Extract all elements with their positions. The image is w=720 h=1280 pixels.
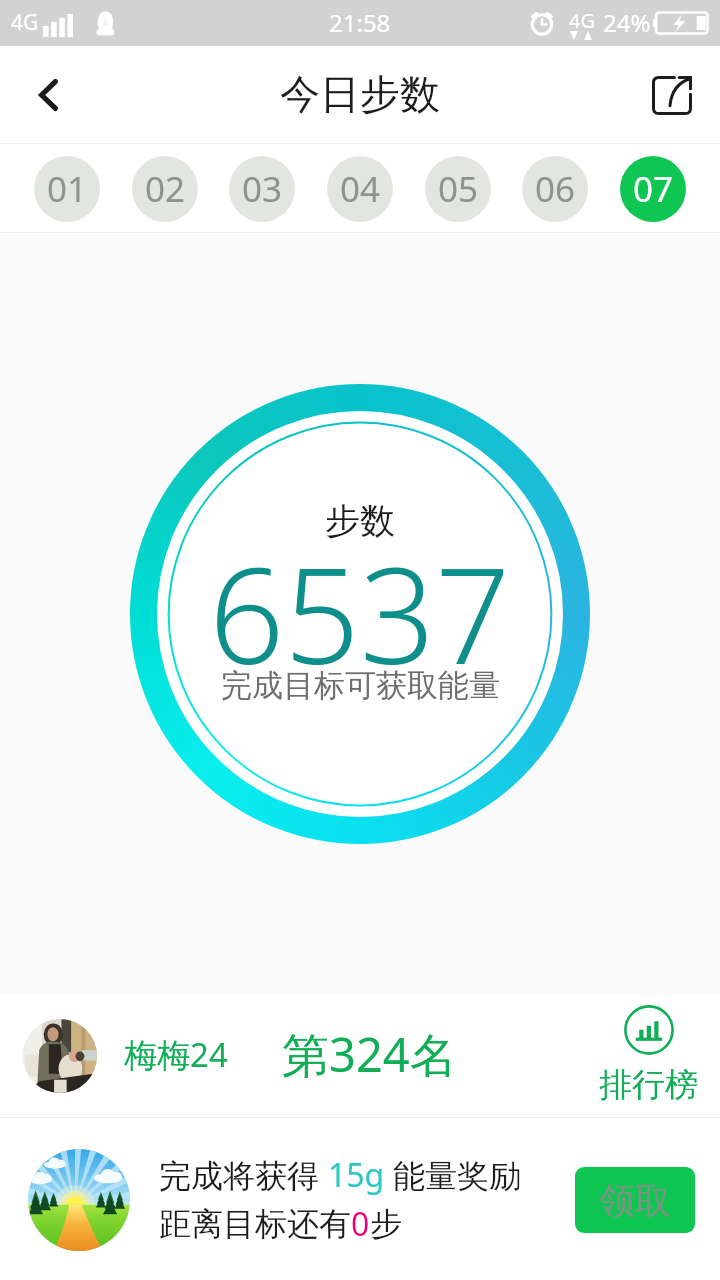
staticText: 15g [328,1153,385,1197]
other: Profile photo [23,1019,97,1093]
staticText: 21:58 [329,6,391,39]
staticText: 今日步数 [280,69,440,119]
staticText: 4G [11,8,39,37]
button[interactable]: 排行榜 [593,994,703,1117]
staticText: 第324名 [282,1022,457,1086]
staticText: 排行榜 [599,1064,698,1106]
button[interactable]: 01 [34,156,100,222]
staticText: 06 [535,165,576,213]
staticText: 6537 [209,523,511,703]
button[interactable]: Share [624,46,720,144]
staticText: 05 [438,165,479,213]
button[interactable]: Profile photo [0,994,560,1117]
button[interactable]: 06 [522,156,588,222]
staticText: 04 [340,165,381,213]
staticText: 距离目标还有 [159,1204,351,1244]
staticText: 07 [633,165,674,213]
staticText: 完成将获得 [159,1153,328,1197]
staticText: 24% [603,6,651,39]
staticText: 梅梅24 [124,1032,228,1077]
staticText: 能量奖励 [385,1153,522,1197]
button[interactable]: Back [0,46,96,144]
staticText: 步数 [325,499,395,543]
button[interactable]: 05 [425,156,491,222]
staticText: 领取 [599,1178,671,1223]
staticText: 完成目标可获取能量 [221,666,500,705]
staticText: 03 [242,165,283,213]
staticText: 01 [47,165,88,213]
button[interactable]: 07 [620,156,686,222]
button[interactable]: 04 [327,156,393,222]
staticText: 步 [370,1204,402,1244]
staticText: 0 [351,1202,370,1246]
button[interactable]: 领取 [575,1167,695,1233]
button[interactable]: 02 [132,156,198,222]
staticText: 02 [145,165,186,213]
staticText: 4G [569,7,595,34]
button[interactable]: 03 [229,156,295,222]
